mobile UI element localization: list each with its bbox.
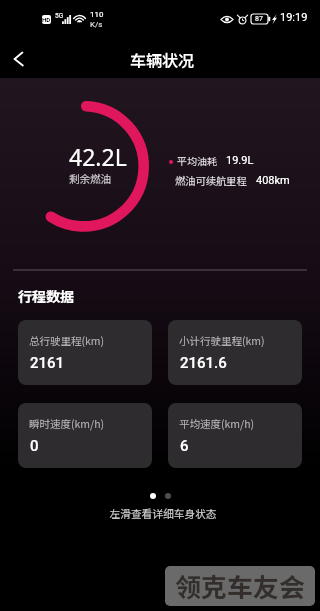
staticText: 6	[180, 437, 189, 455]
staticText: HD	[42, 16, 51, 23]
staticText: 小计行驶里程(km)	[179, 333, 265, 348]
staticText: 左滑查看详细车身状态	[3, 506, 320, 521]
button[interactable]: 平均速度(km/h)	[168, 403, 302, 468]
staticText: 2161	[30, 354, 65, 372]
staticText: 2161.6	[180, 354, 227, 372]
staticText: 110	[90, 10, 104, 19]
staticText: 车辆状况	[130, 48, 195, 71]
button[interactable]: Back	[0, 30, 40, 78]
staticText: 19:19	[280, 11, 308, 24]
staticText: 0	[30, 437, 39, 455]
staticText: 燃油可续航里程	[175, 173, 247, 188]
staticText: 19.9L	[226, 154, 254, 167]
staticText: 总行驶里程(km)	[29, 333, 105, 348]
staticText: 5G	[55, 12, 64, 20]
button[interactable]: 总行驶里程(km)	[18, 320, 152, 385]
button[interactable]: 小计行驶里程(km)	[168, 320, 302, 385]
staticText: 408km	[256, 174, 290, 187]
staticText: 平均速度(km/h)	[179, 416, 255, 431]
staticText: K/s	[90, 20, 103, 29]
staticText: 87	[255, 15, 263, 23]
staticText: 瞬时速度(km/h)	[29, 416, 105, 431]
staticText: 平均油耗	[177, 153, 217, 167]
staticText: 剩余燃油	[69, 171, 111, 186]
staticText: 42.2L	[69, 141, 127, 172]
button[interactable]: 瞬时速度(km/h)	[18, 403, 152, 468]
staticText: 领克车友会	[175, 567, 306, 605]
staticText: 行程数据	[18, 286, 74, 306]
